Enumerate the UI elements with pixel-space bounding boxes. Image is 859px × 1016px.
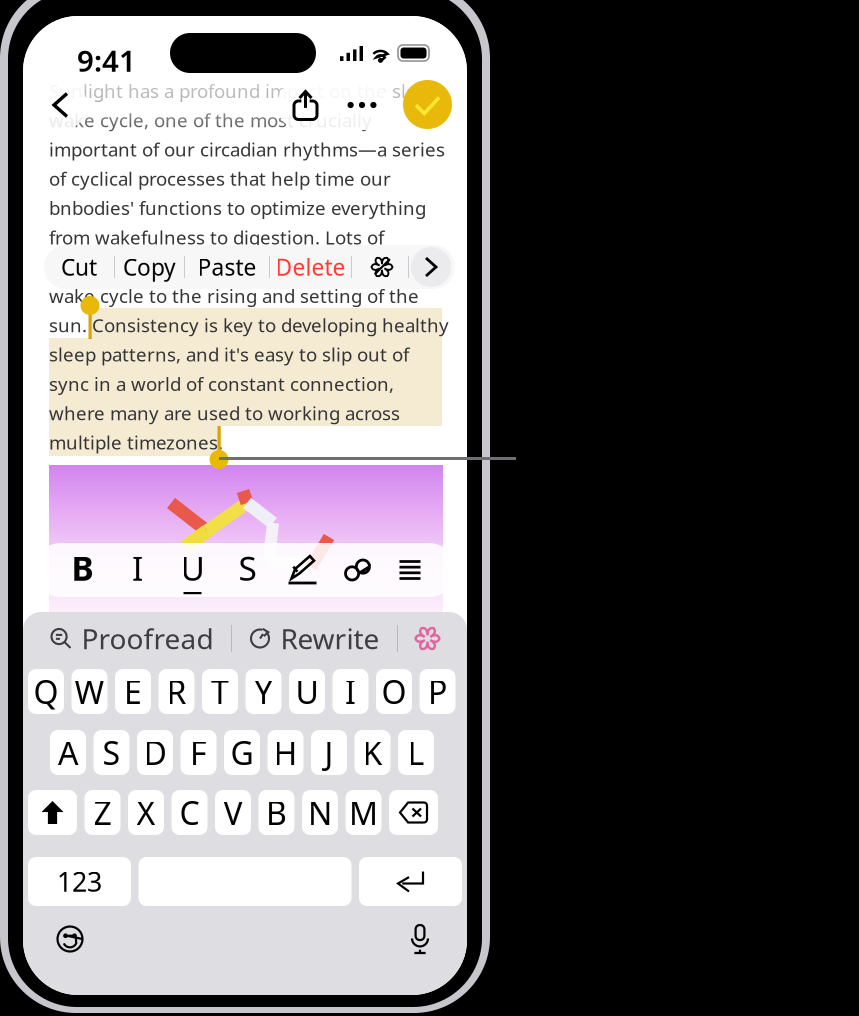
button[interactable]: Link [330,542,385,598]
button[interactable]: Copy [115,245,184,289]
staticText: from wakefulness to digestion. Lots of [49,225,384,250]
button[interactable]: N [302,790,338,835]
staticText: D [143,731,166,774]
staticText: wake cycle to the rising and setting of … [49,283,419,308]
button[interactable]: S [93,730,129,775]
button[interactable]: Return [359,857,462,906]
button[interactable]: Cut [44,245,114,289]
staticText: X [136,791,155,834]
staticText: wake cycle, one of the most crucially [49,108,372,132]
staticText: 123 [57,864,102,899]
button[interactable]: S [220,542,275,598]
staticText: I [132,546,143,590]
staticText: 9:41 [77,41,136,80]
button[interactable]: Z [84,790,120,835]
staticText: F [190,731,207,774]
button[interactable]: Share [277,80,334,130]
staticText: L [407,731,424,774]
staticText: T [211,670,229,713]
button[interactable]: A [50,730,86,775]
button[interactable]: Writing Tools [356,245,408,289]
button[interactable]: Apple Intelligence [415,626,439,650]
button[interactable]: B [55,542,110,598]
button[interactable]: B [258,790,294,835]
button[interactable]: Emoji [46,918,94,960]
button[interactable]: I [332,669,368,714]
button[interactable]: O [376,669,412,714]
button[interactable]: R [158,669,194,714]
button[interactable]: T [202,669,238,714]
button[interactable]: H [267,730,303,775]
staticText: P [428,670,447,713]
staticText: N [308,791,332,834]
staticText: B [266,791,287,834]
staticText: sleep patterns, and it's easy to slip ou… [49,342,409,367]
staticText: important of our circadian rhythms—a ser… [49,137,445,162]
button[interactable]: D [137,730,173,775]
staticText: A [58,731,78,774]
button[interactable]: U [165,542,220,598]
staticText: multiple timezones. [49,430,223,455]
staticText: B [71,546,93,590]
button[interactable]: E [115,669,151,714]
button[interactable]: M [345,790,381,835]
button[interactable]: Dictate [396,918,444,960]
button[interactable]: More actions [409,245,453,289]
button[interactable]: Y [245,669,281,714]
staticText: Y [254,670,272,713]
button[interactable]: Proofread [50,620,213,657]
staticText: bnbodies' functions to optimize everythi… [49,195,426,220]
staticText: S [102,731,120,774]
button[interactable]: U [289,669,325,714]
button[interactable]: Delete [389,790,438,835]
staticText: Paste [197,252,256,282]
button[interactable]: G [224,730,260,775]
button[interactable]: Paste [185,245,269,289]
staticText: O [381,670,406,713]
staticText: sun. Consistency is key to developing he… [49,313,449,337]
button[interactable]: F [180,730,216,775]
staticText: R [166,670,186,713]
staticText: C [179,791,199,834]
button[interactable]: I [110,542,165,598]
button[interactable]: List [385,542,435,598]
staticText: sync in a world of constant connection, [49,371,394,396]
button[interactable]: P [419,669,455,714]
staticText: Proofread [81,620,213,657]
button[interactable]: Shift [28,790,77,835]
button[interactable]: X [128,790,164,835]
button[interactable]: W [71,669,107,714]
button[interactable]: Back [37,80,87,130]
staticText: exposure to sunlight helps link our slee… [49,254,415,279]
button[interactable]: V [215,790,251,835]
staticText: G [230,731,253,774]
button[interactable]: J [311,730,347,775]
staticText: J [324,731,333,774]
button[interactable]: Rewrite [249,620,379,657]
button[interactable]: More [334,80,390,130]
staticText: Q [33,670,58,713]
staticText: Rewrite [280,620,379,657]
button[interactable]: K [354,730,390,775]
button[interactable]: Highlight [275,542,330,598]
staticText: K [362,731,382,774]
staticText: I [345,670,356,713]
staticText: V [223,791,242,834]
staticText: S [238,546,256,590]
staticText: Z [93,791,111,834]
staticText: Cut [61,252,97,282]
staticText: Copy [123,252,176,282]
staticText: where many are used to working across [49,401,400,425]
button[interactable]: Q [28,669,64,714]
button[interactable]: L [398,730,434,775]
staticText: Sunlight has a profound impact on the sl… [49,78,445,103]
button[interactable]: Done [403,80,452,129]
staticText: Sunlight and Sleep [68,0,413,43]
button[interactable]: Delete [270,245,351,289]
staticText: H [273,731,297,774]
button[interactable]: C [171,790,207,835]
button[interactable]: 123 [28,857,131,906]
staticText: M [349,791,378,834]
staticText: U [180,546,204,590]
